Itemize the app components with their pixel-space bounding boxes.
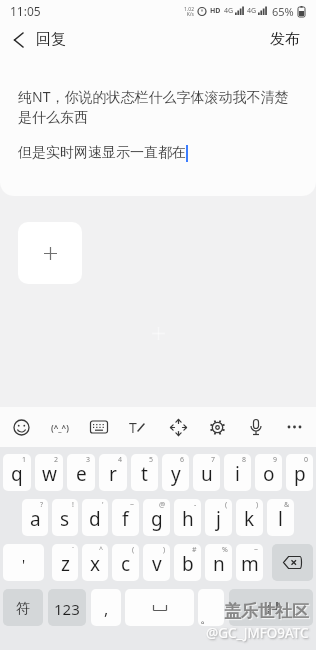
staticText: x xyxy=(90,551,101,577)
staticText: ) xyxy=(163,545,166,555)
staticText: 4 xyxy=(118,455,123,465)
button[interactable]: h xyxy=(174,499,201,536)
button[interactable]: y xyxy=(162,454,189,491)
button[interactable]: c xyxy=(112,544,139,581)
button[interactable] xyxy=(229,589,313,626)
staticText: o xyxy=(263,461,275,487)
staticText: ' xyxy=(102,500,104,510)
button[interactable]: u xyxy=(193,454,220,491)
button[interactable]: p xyxy=(286,454,313,491)
staticText: 3 xyxy=(86,455,91,465)
button[interactable]: s xyxy=(52,499,78,536)
staticText: 6 xyxy=(180,455,185,465)
staticText: q xyxy=(11,461,23,487)
button[interactable]: z xyxy=(52,544,78,581)
staticText: HD xyxy=(210,6,221,16)
staticText: f xyxy=(122,506,129,532)
staticText: # xyxy=(192,545,197,555)
button[interactable]: b xyxy=(174,544,201,581)
button[interactable]: , xyxy=(91,589,121,626)
button[interactable]: r xyxy=(99,454,127,491)
button[interactable]: d xyxy=(82,499,108,536)
button[interactable]: 。 xyxy=(198,589,224,626)
button[interactable]: o xyxy=(255,454,282,491)
button[interactable]: k xyxy=(236,499,263,536)
staticText: ( xyxy=(132,545,135,555)
button[interactable]: w xyxy=(35,454,63,491)
button[interactable] xyxy=(18,222,82,284)
button[interactable]: T xyxy=(123,409,153,445)
button[interactable]: n xyxy=(205,544,232,581)
button[interactable]: f xyxy=(112,499,139,536)
button[interactable]: g xyxy=(143,499,170,536)
button[interactable]: l xyxy=(267,499,294,536)
button[interactable]: ' xyxy=(3,544,44,581)
button[interactable]: e xyxy=(67,454,95,491)
staticText: 纯NT，你说的状态栏什么字体滚动我不清楚 是什么东西 xyxy=(18,87,289,126)
button[interactable] xyxy=(272,544,313,581)
staticText: 11:05 xyxy=(10,3,41,19)
button[interactable]: 发布 xyxy=(254,22,316,57)
staticText: ` xyxy=(72,545,74,555)
staticText: d xyxy=(89,506,101,532)
staticText: s xyxy=(60,506,70,532)
staticText: ! xyxy=(72,500,74,510)
staticText: ~ xyxy=(254,545,259,555)
staticText: a xyxy=(30,506,41,532)
staticText: m xyxy=(241,551,259,577)
button[interactable] xyxy=(280,409,310,445)
staticText: @ xyxy=(159,500,166,510)
staticText: ? xyxy=(40,500,44,510)
staticText: g xyxy=(151,506,163,532)
staticText: l xyxy=(278,506,283,532)
staticText: u xyxy=(201,461,213,487)
button[interactable] xyxy=(163,409,193,445)
staticText: ( xyxy=(225,500,228,510)
button[interactable] xyxy=(241,409,271,445)
staticText: y xyxy=(171,461,181,487)
button[interactable]: i xyxy=(224,454,251,491)
staticText: ^ xyxy=(99,545,104,555)
staticText: 1 xyxy=(22,455,27,465)
staticText: b xyxy=(182,551,194,577)
staticText: 4G xyxy=(247,6,257,16)
button[interactable]: 123 xyxy=(48,589,86,626)
staticText: 4G xyxy=(224,6,234,16)
button[interactable]: x xyxy=(82,544,108,581)
button[interactable]: v xyxy=(143,544,170,581)
staticText: 1.02 K/s xyxy=(184,6,194,17)
staticText: 但是实时网速显示一直都在 xyxy=(18,144,186,162)
button[interactable]: m xyxy=(236,544,263,581)
button[interactable]: q xyxy=(3,454,31,491)
staticText: 0 xyxy=(304,455,309,465)
button[interactable] xyxy=(202,409,232,445)
staticText: r xyxy=(109,461,117,487)
staticText: 7 xyxy=(211,455,216,465)
staticText: & xyxy=(284,500,290,510)
staticText: ) xyxy=(256,500,259,510)
staticText: k xyxy=(244,506,255,532)
staticText: @GC_JMFO9ATC xyxy=(206,624,309,642)
staticText: (^_^) xyxy=(51,422,69,433)
button[interactable]: a xyxy=(22,499,48,536)
button[interactable]: j xyxy=(205,499,232,536)
button[interactable] xyxy=(125,589,194,626)
staticText: 符 xyxy=(16,600,30,618)
staticText: 5 xyxy=(149,455,154,465)
button[interactable]: (^_^) xyxy=(45,409,75,445)
staticText: c xyxy=(121,551,131,577)
staticText: - xyxy=(194,500,197,510)
staticText: 9 xyxy=(273,455,278,465)
button[interactable] xyxy=(6,409,36,445)
staticText: 回复 xyxy=(36,30,66,49)
staticText: 发布 xyxy=(270,30,300,49)
staticText: e xyxy=(76,461,87,487)
button[interactable]: t xyxy=(131,454,158,491)
staticText: z xyxy=(61,551,70,577)
staticText: % xyxy=(222,545,228,555)
staticText: t xyxy=(141,461,148,487)
button[interactable] xyxy=(84,409,114,445)
button[interactable] xyxy=(0,22,36,57)
button[interactable]: 符 xyxy=(3,589,43,626)
staticText: ~ xyxy=(130,500,135,510)
